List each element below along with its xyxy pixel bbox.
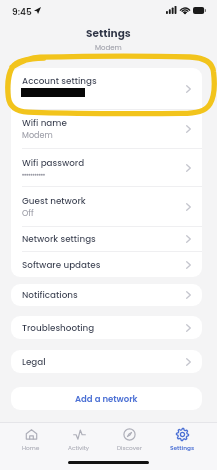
staticText: Network settings xyxy=(22,233,96,245)
staticText: 9:45 xyxy=(12,6,32,19)
button[interactable]: Discover xyxy=(111,427,148,453)
staticText: Settings xyxy=(170,444,195,452)
staticText: Notifications xyxy=(22,289,78,301)
button[interactable]: Software updates xyxy=(11,252,202,277)
staticText: Add a network xyxy=(75,393,138,405)
staticText: Settings xyxy=(86,26,131,41)
staticText: Modem xyxy=(22,130,53,141)
button[interactable]: Activity xyxy=(62,427,96,453)
staticText: Wifi name xyxy=(22,117,67,129)
staticText: Wifi password xyxy=(22,157,85,169)
staticText: Activity xyxy=(68,444,90,452)
button[interactable]: Wifi password xyxy=(11,149,202,186)
button[interactable]: Wifi name xyxy=(11,110,202,148)
staticText: Legal xyxy=(22,356,46,368)
staticText: Off xyxy=(22,208,34,219)
staticText: Guest network xyxy=(22,195,86,207)
button[interactable]: Notifications xyxy=(11,284,202,306)
button[interactable]: Guest network xyxy=(11,187,202,226)
staticText: Home xyxy=(22,444,40,452)
staticText: Discover xyxy=(117,444,142,452)
button[interactable]: Add a network xyxy=(11,387,202,410)
staticText: Modem xyxy=(95,43,122,53)
button[interactable]: Network settings xyxy=(11,227,202,251)
button[interactable]: Settings xyxy=(164,427,201,453)
button[interactable]: Legal xyxy=(11,350,202,373)
staticText: Troubleshooting xyxy=(22,322,95,334)
button[interactable]: Account settings xyxy=(11,68,202,109)
button[interactable]: Troubleshooting xyxy=(11,316,202,339)
button[interactable]: Home xyxy=(16,427,46,453)
staticText: Account settings xyxy=(22,75,97,87)
staticText: Software updates xyxy=(22,259,101,271)
